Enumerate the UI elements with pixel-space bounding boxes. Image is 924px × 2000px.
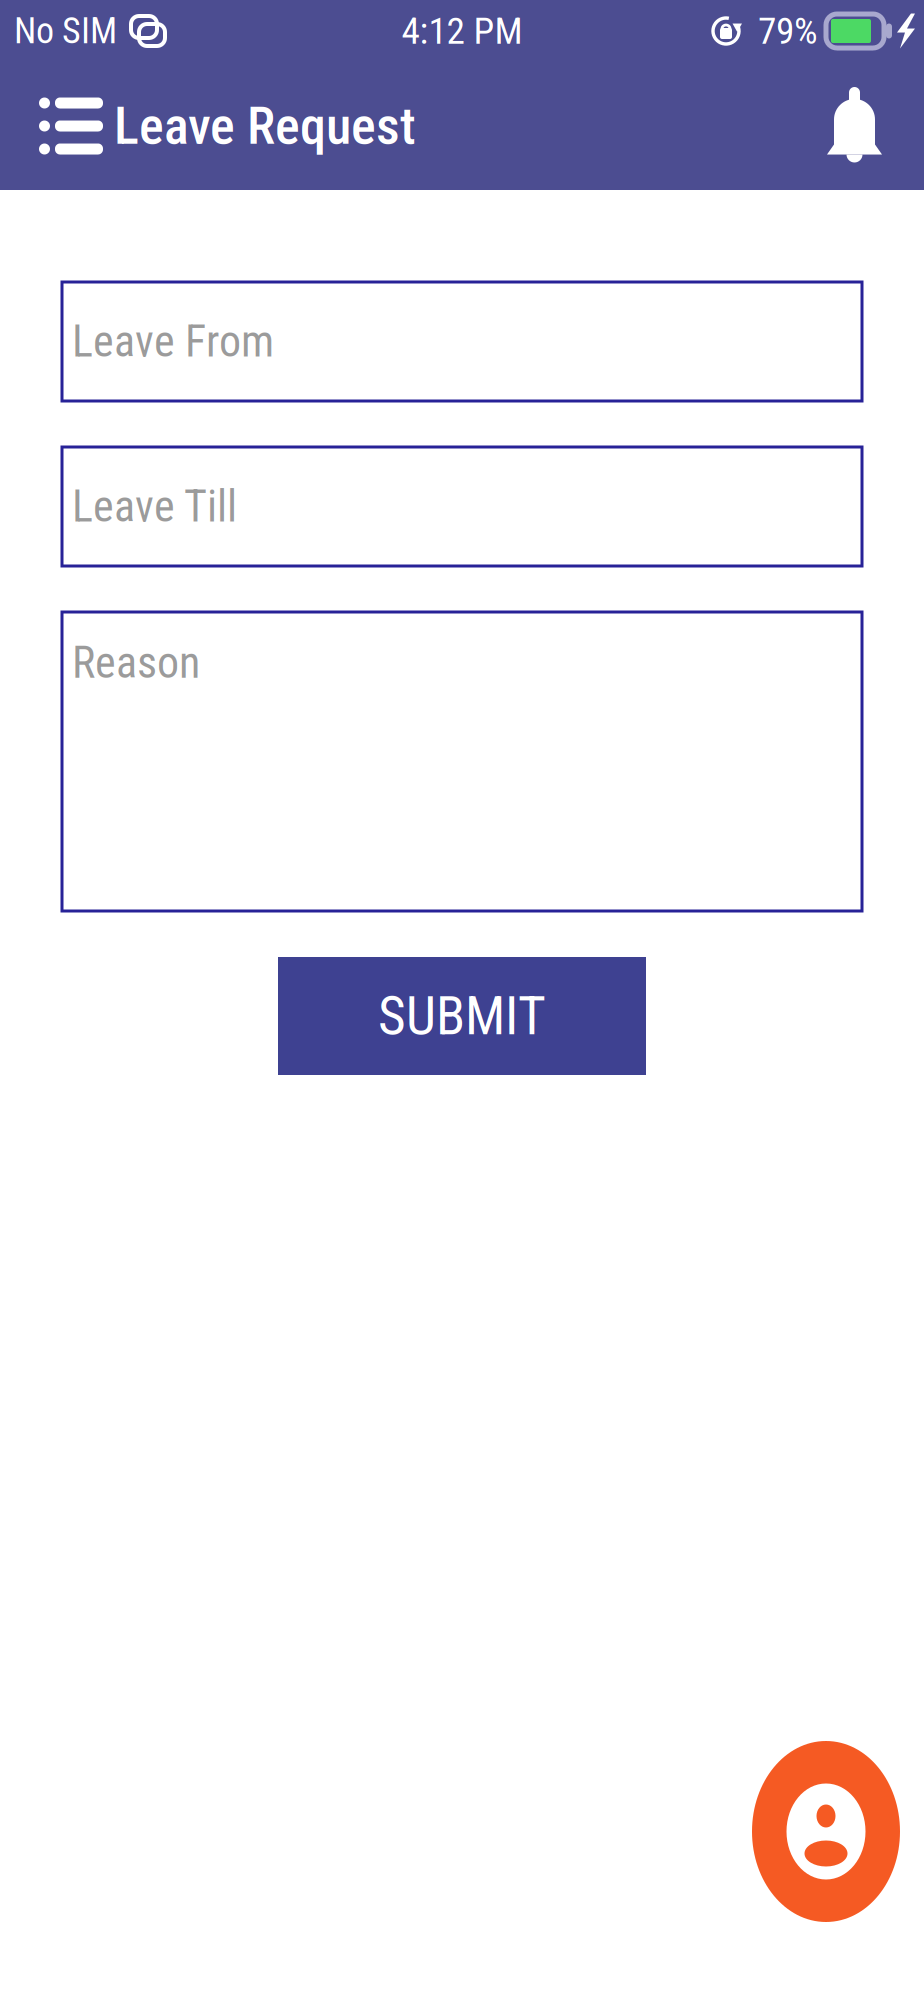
- staticText: 4:12 PM: [401, 9, 522, 53]
- button[interactable]: Menu: [0, 62, 114, 190]
- button[interactable]: Leave From: [62, 282, 862, 401]
- button[interactable]: Profile: [752, 1741, 900, 1922]
- staticText: Reason: [72, 637, 200, 689]
- button[interactable]: Leave Till: [62, 447, 862, 566]
- staticText: No SIM: [14, 10, 117, 52]
- button[interactable]: SUBMIT: [278, 957, 646, 1075]
- staticText: 79%: [758, 9, 818, 53]
- staticText: Leave Request: [114, 95, 416, 156]
- button[interactable]: Reason: [62, 612, 862, 911]
- staticText: SUBMIT: [378, 985, 546, 1047]
- staticText: Leave Till: [72, 481, 237, 532]
- button[interactable]: Notifications: [803, 62, 924, 190]
- staticText: Leave From: [72, 316, 274, 367]
